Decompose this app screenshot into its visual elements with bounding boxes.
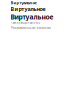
staticText: Виртуальное xyxy=(10,12,53,21)
staticText: Развивающие занятия xyxy=(10,25,50,30)
staticText: Виртуальное xyxy=(10,5,45,12)
staticText: Виртуальное xyxy=(10,0,36,5)
staticText: Развивающие занятия xyxy=(10,21,40,25)
